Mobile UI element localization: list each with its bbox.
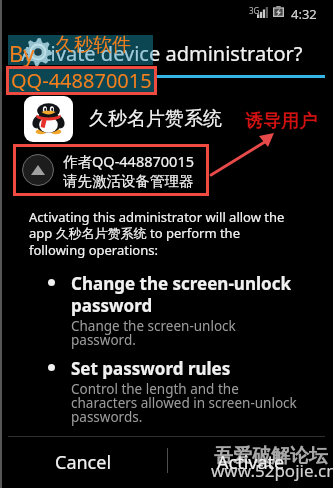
staticText: Activating this administrator will allow…	[29, 208, 295, 259]
staticText: 3G	[249, 5, 260, 16]
staticText: 作者QQ-448870015	[63, 151, 194, 171]
staticText: Control the length and the characters al…	[71, 380, 297, 426]
staticText: Set password rules	[71, 357, 231, 380]
staticText: QQ-448870015	[11, 67, 152, 94]
staticText: www.52pojie.cn	[211, 459, 333, 482]
staticText: 久秒名片赞系统	[89, 107, 222, 131]
staticText: Cancel	[55, 450, 112, 475]
staticText: 4:32	[291, 5, 317, 23]
staticText: Change the screen-unlock password.	[71, 317, 297, 349]
staticText: 久秒软件	[55, 33, 131, 57]
button[interactable]: Activate	[168, 437, 333, 488]
staticText: Activate	[217, 450, 285, 475]
staticText: 吾爱破解论坛	[214, 444, 328, 468]
staticText: 请先激活设备管理器	[63, 172, 194, 190]
staticText: By	[9, 38, 35, 68]
staticText: Activate device administrator?	[21, 40, 303, 67]
button[interactable]: Cancel	[0, 437, 167, 488]
staticText: 诱导用户	[245, 110, 317, 133]
staticText: Activate device administrator?	[21, 40, 153, 65]
button[interactable]: Activate device administrator	[13, 144, 209, 196]
staticText: Change the screen-unlock password	[71, 272, 297, 317]
